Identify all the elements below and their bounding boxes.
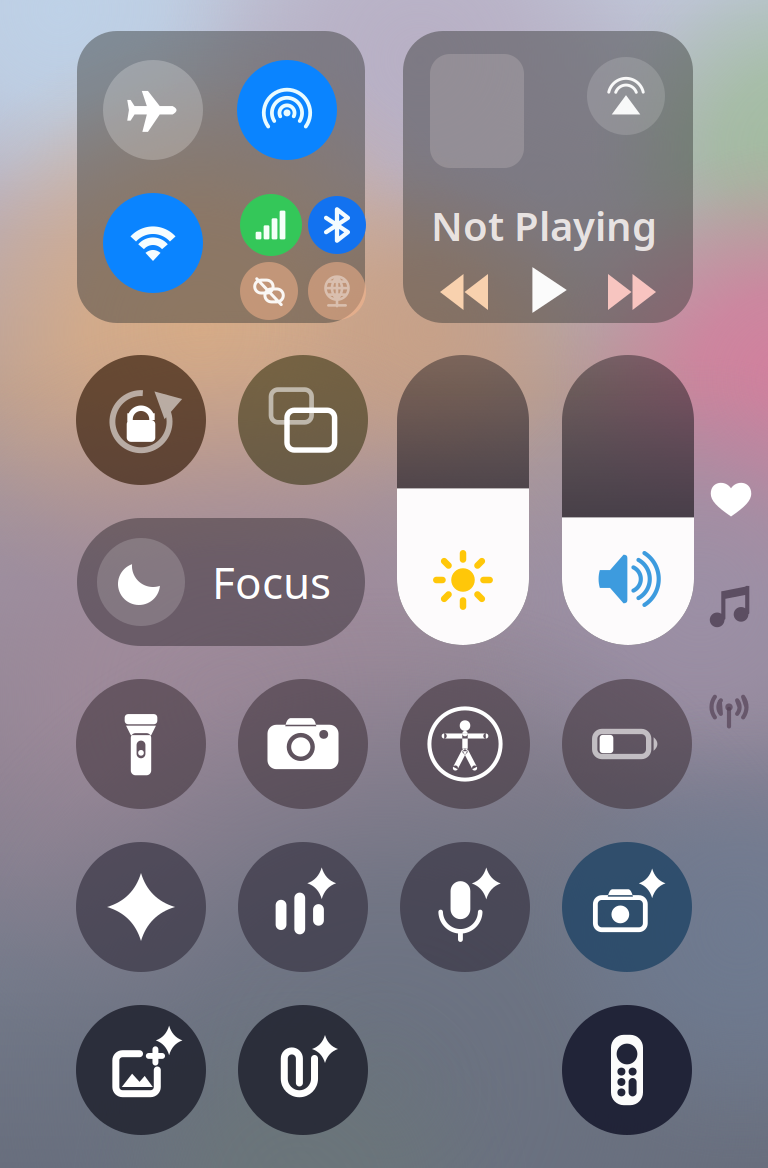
button[interactable]: Brightness — [397, 355, 529, 645]
button[interactable]: Personal Hotspot — [240, 262, 298, 320]
button[interactable]: Bluetooth — [308, 196, 366, 254]
button[interactable]: Screen Mirroring — [238, 355, 368, 485]
button[interactable]: Airplane Mode — [103, 60, 203, 160]
staticText: Focus — [212, 553, 331, 611]
button[interactable]: Visual Intelligence — [562, 842, 692, 972]
button[interactable]: Image Playground — [76, 1005, 206, 1135]
button[interactable]: Audio Mix — [238, 842, 368, 972]
button[interactable]: AirPlay — [587, 57, 665, 135]
button[interactable]: Favorite — [702, 469, 760, 527]
staticText: Not Playing — [431, 199, 657, 252]
button[interactable]: Rewind — [427, 261, 501, 323]
button[interactable]: AirDrop — [237, 60, 337, 160]
button[interactable]: Rotation Lock — [76, 355, 206, 485]
button[interactable]: Music Recognition — [701, 578, 759, 636]
button[interactable]: Apple Intelligence — [76, 842, 206, 972]
button[interactable]: Camera — [238, 679, 368, 809]
button[interactable]: Volume — [562, 355, 694, 645]
button[interactable]: Wi-Fi — [103, 193, 203, 293]
button[interactable]: Cellular Data — [240, 194, 302, 256]
button[interactable]: Low Power Mode — [562, 679, 692, 809]
button[interactable]: Focus — [77, 518, 365, 646]
button[interactable]: Attach — [238, 1005, 368, 1135]
button[interactable]: Accessibility — [400, 679, 530, 809]
button[interactable]: Apple TV Remote — [562, 1005, 692, 1135]
button[interactable]: Voice Memo — [400, 842, 530, 972]
button[interactable]: Broadcast — [700, 679, 758, 737]
button[interactable]: VPN — [308, 262, 366, 320]
button[interactable]: Play — [511, 259, 585, 321]
button[interactable]: Fast Forward — [595, 261, 669, 323]
button[interactable]: Flashlight — [76, 679, 206, 809]
